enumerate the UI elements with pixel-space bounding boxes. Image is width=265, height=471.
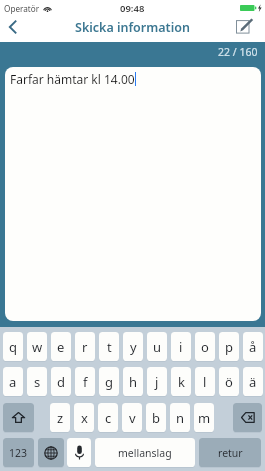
button[interactable]: Switch keyboard — [38, 438, 64, 467]
button[interactable]: Farfar hämtar kl 14.00 — [5, 67, 261, 321]
staticText: a — [9, 373, 17, 391]
staticText: å — [249, 338, 257, 356]
button[interactable]: z — [50, 403, 70, 432]
staticText: t — [107, 338, 112, 356]
staticText: l — [203, 373, 207, 391]
staticText: n — [176, 409, 185, 427]
button[interactable]: n — [170, 403, 190, 432]
button[interactable]: f — [75, 367, 95, 396]
staticText: mellanslag — [118, 446, 172, 460]
button[interactable]: Back — [0, 13, 26, 41]
staticText: f — [83, 373, 88, 391]
button[interactable]: p — [219, 332, 239, 361]
staticText: Operatör — [4, 3, 40, 14]
staticText: ö — [225, 373, 233, 391]
button[interactable]: d — [51, 367, 71, 396]
staticText: j — [155, 373, 159, 391]
staticText: p — [225, 338, 233, 356]
staticText: q — [9, 338, 17, 356]
button[interactable]: q — [3, 332, 23, 361]
button[interactable]: s — [27, 367, 47, 396]
staticText: y — [130, 338, 137, 356]
button[interactable]: Compose message — [232, 13, 258, 39]
button[interactable]: ö — [219, 367, 239, 396]
staticText: 22 / 160 — [218, 45, 258, 59]
button[interactable]: Shift — [3, 403, 34, 432]
button[interactable]: m — [194, 403, 214, 432]
button[interactable]: h — [123, 367, 143, 396]
button[interactable]: e — [51, 332, 71, 361]
button[interactable]: c — [98, 403, 118, 432]
staticText: o — [201, 338, 209, 356]
button[interactable]: mellanslag — [95, 438, 195, 467]
button[interactable]: a — [3, 367, 23, 396]
staticText: w — [32, 338, 43, 356]
button[interactable]: y — [123, 332, 143, 361]
staticText: retur — [218, 446, 243, 460]
button[interactable]: å — [243, 332, 263, 361]
staticText: v — [129, 409, 136, 427]
staticText: 123 — [9, 446, 28, 460]
staticText: b — [152, 409, 160, 427]
button[interactable]: k — [171, 367, 191, 396]
button[interactable]: u — [147, 332, 167, 361]
button[interactable]: ä — [243, 367, 263, 396]
button[interactable]: j — [147, 367, 167, 396]
staticText: d — [57, 373, 65, 391]
staticText: h — [129, 373, 138, 391]
button[interactable]: Dictation — [67, 438, 91, 467]
button[interactable]: o — [195, 332, 215, 361]
staticText: u — [153, 338, 162, 356]
staticText: s — [34, 373, 41, 391]
staticText: z — [57, 409, 64, 427]
staticText: 09:48 — [120, 2, 145, 15]
staticText: m — [198, 409, 211, 427]
staticText: c — [105, 409, 112, 427]
button[interactable]: w — [27, 332, 47, 361]
button[interactable]: l — [195, 367, 215, 396]
button[interactable]: r — [75, 332, 95, 361]
staticText: g — [105, 373, 113, 391]
button[interactable]: x — [74, 403, 94, 432]
button[interactable]: b — [146, 403, 166, 432]
staticText: r — [82, 338, 88, 356]
button[interactable]: i — [171, 332, 191, 361]
button[interactable]: g — [99, 367, 119, 396]
button[interactable]: v — [122, 403, 142, 432]
button[interactable]: 123 — [3, 438, 34, 467]
staticText: ä — [249, 373, 257, 391]
button[interactable]: t — [99, 332, 119, 361]
staticText: Skicka information — [75, 19, 190, 36]
staticText: k — [178, 373, 185, 391]
button[interactable]: retur — [199, 438, 261, 467]
staticText: i — [179, 338, 183, 356]
staticText: x — [81, 409, 88, 427]
staticText: e — [57, 338, 65, 356]
button[interactable]: Backspace — [233, 403, 262, 432]
staticText: Farfar hämtar kl 14.00 — [10, 71, 135, 87]
